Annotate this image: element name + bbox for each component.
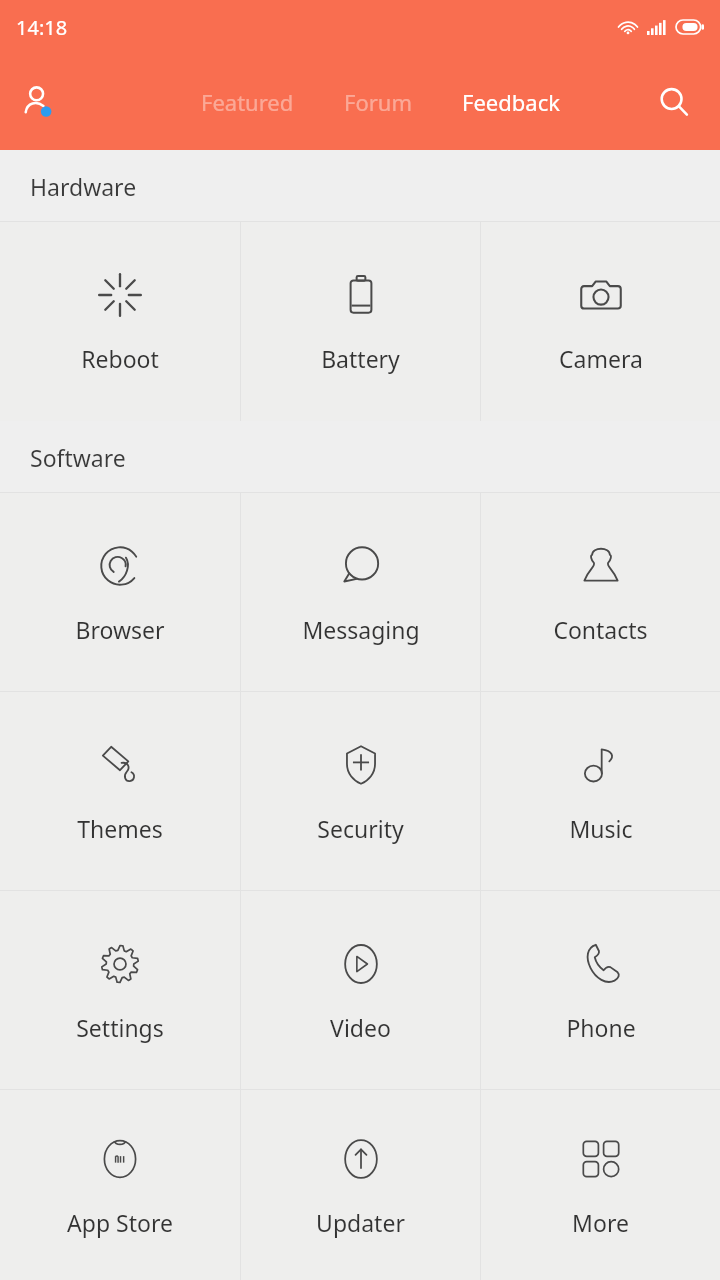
button[interactable]: Search [646, 74, 702, 130]
staticText: Contacts [553, 614, 648, 645]
button[interactable]: Video [241, 891, 480, 1090]
button[interactable]: Reboot [0, 222, 240, 421]
staticText: Themes [77, 813, 163, 844]
staticText: App Store [67, 1207, 173, 1238]
staticText: Battery [321, 343, 400, 374]
staticText: Settings [76, 1012, 164, 1043]
staticText: Music [569, 813, 633, 844]
staticText: 14:18 [16, 14, 68, 41]
button[interactable]: Themes [0, 692, 240, 891]
staticText: Browser [75, 614, 165, 645]
staticText: Phone [566, 1012, 636, 1043]
staticText: Hardware [30, 171, 137, 202]
staticText: More [572, 1207, 629, 1238]
staticText: Feedback [462, 87, 560, 117]
staticText: Camera [559, 343, 643, 374]
staticText: Messaging [302, 614, 420, 645]
button[interactable]: Browser [0, 493, 240, 692]
button[interactable]: Messaging [241, 493, 480, 692]
staticText: Video [330, 1012, 391, 1043]
button[interactable]: Settings [0, 891, 240, 1090]
button[interactable]: Music [481, 692, 720, 891]
staticText: Featured [201, 87, 294, 117]
button[interactable]: Battery [241, 222, 480, 421]
button[interactable]: Contacts [481, 493, 720, 692]
button[interactable]: Feedback [460, 77, 562, 127]
button[interactable]: App Store [0, 1090, 240, 1280]
button[interactable]: Camera [481, 222, 720, 421]
button[interactable]: Featured [199, 77, 296, 127]
staticText: Software [30, 442, 126, 473]
staticText: Reboot [81, 343, 159, 374]
staticText: Forum [344, 87, 412, 117]
staticText: Security [317, 813, 404, 844]
button[interactable]: More [481, 1090, 720, 1280]
button[interactable]: Security [241, 692, 480, 891]
button[interactable]: Phone [481, 891, 720, 1090]
button[interactable]: Account [12, 74, 68, 130]
button[interactable]: Updater [241, 1090, 480, 1280]
staticText: Updater [316, 1207, 405, 1238]
button[interactable]: Forum [342, 77, 414, 127]
